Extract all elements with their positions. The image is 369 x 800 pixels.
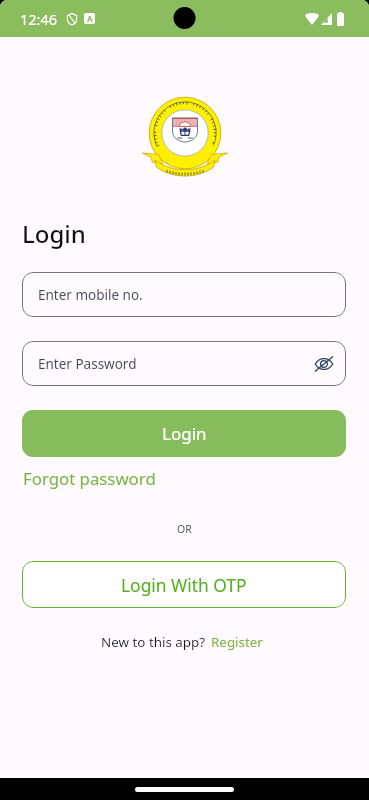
staticText: Forgot password (23, 467, 156, 490)
button[interactable]: Forgot password (21, 465, 158, 492)
staticText: New to this app? (101, 633, 206, 651)
staticText: 12:46 (20, 9, 58, 29)
button[interactable]: Show password (312, 352, 336, 376)
button[interactable]: Login (22, 410, 346, 457)
staticText: Enter Password (38, 355, 137, 373)
staticText: OR (177, 522, 192, 536)
staticText: A (87, 13, 93, 24)
staticText: Login (22, 217, 86, 250)
button[interactable]: Enter mobile no. (22, 272, 346, 317)
staticText: Login With OTP (121, 573, 247, 597)
staticText: Login (162, 422, 207, 445)
button[interactable]: Enter Password (22, 341, 346, 386)
staticText: Enter mobile no. (38, 286, 143, 304)
button[interactable]: Register (211, 633, 263, 651)
button[interactable]: Login With OTP (22, 561, 346, 608)
staticText: Register (211, 633, 263, 651)
